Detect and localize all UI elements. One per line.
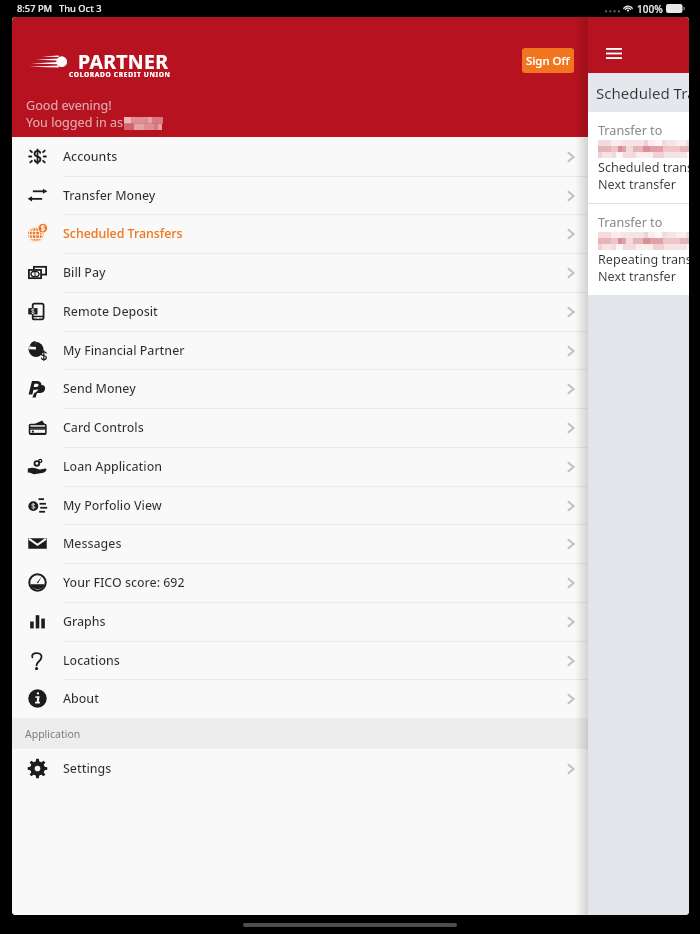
staticText: Locations [63,652,120,669]
button[interactable]: Card Controls [12,408,588,447]
staticText: Messages [63,535,122,552]
button[interactable]: Messages [12,524,588,563]
staticText: Scheduled Transfers [63,225,183,242]
button[interactable]: Scheduled Transfers [12,214,588,253]
staticText: Sign Off [526,53,570,69]
staticText: Next transfer [598,268,676,285]
button[interactable]: Menu [606,48,622,59]
button[interactable]: Loan Application [12,447,588,486]
button[interactable]: Transfer to [588,112,689,203]
staticText: Transfer to [598,214,663,231]
button[interactable]: Sign Off [522,48,574,73]
button[interactable]: Transfer to [588,204,689,295]
staticText: 100% [637,2,663,16]
button[interactable]: My Financial Partner [12,331,588,370]
button[interactable]: About [12,679,588,718]
staticText: Scheduled Transfers [596,83,689,104]
staticText: Bill Pay [63,264,106,281]
staticText: Your FICO score: 692 [63,574,185,591]
staticText: PARTNER [78,48,169,75]
button[interactable]: Remote Deposit [12,292,588,331]
button[interactable]: Transfer Money [12,176,588,215]
staticText: Good evening! [26,97,112,114]
staticText: You logged in as [26,114,127,131]
staticText: Graphs [63,613,106,630]
staticText: Transfer Money [63,187,156,204]
staticText: Transfer to [598,122,663,139]
staticText: Repeating transfer [598,251,689,268]
button[interactable]: Settings [12,749,588,788]
staticText: About [63,690,99,707]
staticText: Settings [63,760,112,777]
staticText: Card Controls [63,419,144,436]
staticText: COLORADO CREDIT UNION [69,70,171,79]
button[interactable]: My Porfolio View [12,486,588,525]
staticText: Next transfer [598,176,676,193]
button[interactable]: Send Money [12,369,588,408]
staticText: Send Money [63,380,136,397]
staticText: Loan Application [63,458,163,475]
staticText: My Financial Partner [63,342,185,359]
button[interactable]: Accounts [12,137,588,176]
staticText: Remote Deposit [63,303,158,320]
button[interactable]: Your FICO score: 692 [12,563,588,602]
staticText: Thu Oct 3 [59,2,102,15]
button[interactable]: Locations [12,641,588,680]
button[interactable]: Bill Pay [12,253,588,292]
staticText: Application [25,727,81,741]
staticText: Accounts [63,148,118,165]
staticText: Scheduled transfer [598,159,689,176]
staticText: My Porfolio View [63,497,162,514]
staticText: 8:57 PM [17,2,53,15]
button[interactable]: Graphs [12,602,588,641]
